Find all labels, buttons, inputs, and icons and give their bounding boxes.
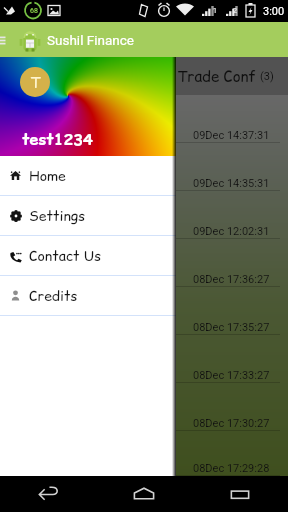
button[interactable]: Settings (0, 196, 176, 236)
button[interactable]: 09Dec 12:02:31 (0, 191, 288, 239)
staticText: 2 (233, 7, 237, 15)
staticText: Trade Conf (177, 66, 256, 87)
button[interactable]: T (0, 57, 176, 156)
button[interactable]: 09Dec 14:37:31 (0, 95, 288, 143)
staticText: 09Dec 14:37:31 (193, 129, 270, 142)
staticText: 1 (213, 7, 217, 15)
button[interactable]: Home (0, 156, 176, 196)
staticText: 3:00 (263, 5, 285, 18)
staticText: Settings (29, 206, 86, 226)
button[interactable]: 08Dec 17:33:27 (0, 335, 288, 383)
button[interactable]: Open navigation drawer (0, 33, 6, 47)
button[interactable]: 08Dec 17:35:27 (0, 287, 288, 335)
button[interactable]: aet astaset (0, 239, 288, 287)
staticText: (3) (260, 70, 274, 83)
staticText: s taest (6, 269, 46, 286)
staticText: Sushil Finance (47, 32, 134, 48)
button[interactable]: Contact Us (0, 236, 176, 276)
staticText: 09Dec 12:02:31 (193, 225, 270, 238)
button[interactable]: 08Dec 17:29:28 (0, 431, 288, 476)
staticText: 68 (30, 7, 38, 15)
staticText: Home (29, 166, 66, 186)
button[interactable]: Back (0, 476, 96, 512)
staticText: 08Dec 17:29:28 (193, 462, 270, 475)
staticText: 09Dec 14:35:31 (193, 177, 270, 190)
button[interactable]: Home (96, 476, 192, 512)
staticText: 08Dec 17:33:27 (193, 369, 270, 382)
button[interactable]: Recent apps (192, 476, 288, 512)
staticText: 08Dec 17:35:27 (193, 321, 270, 334)
button[interactable]: Credits (0, 276, 176, 316)
button[interactable]: 08Dec 17:30:27 (0, 383, 288, 431)
staticText: Credits (29, 286, 78, 306)
staticText: Contact Us (29, 246, 101, 266)
staticText: 08Dec 17:36:27 (193, 273, 270, 286)
button[interactable]: 09Dec 14:35:31 (0, 143, 288, 191)
staticText: test1234 (22, 128, 93, 150)
staticText: T (30, 72, 41, 93)
staticText: aet astaset (6, 252, 70, 269)
staticText: 08Dec 17:30:27 (193, 417, 270, 430)
